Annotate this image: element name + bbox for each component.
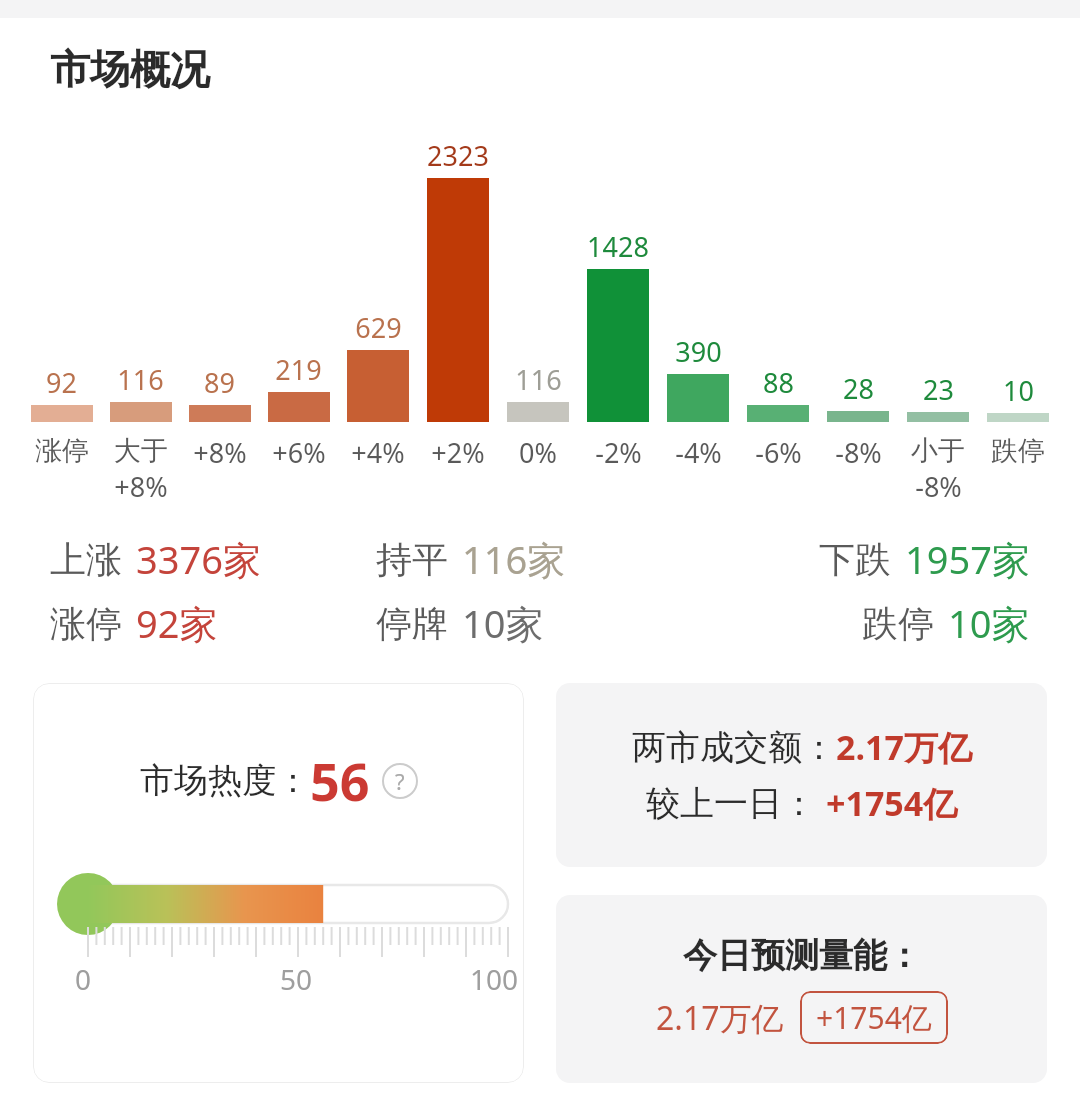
- staticText: 停牌: [376, 601, 448, 646]
- staticText: 116: [515, 361, 562, 398]
- staticText: 0%: [519, 434, 557, 471]
- button[interactable]: 下跌: [703, 533, 1030, 585]
- staticText: 1428: [587, 228, 649, 265]
- staticText: 涨停: [35, 434, 89, 468]
- staticText: +1754亿: [816, 997, 932, 1038]
- button[interactable]: 跌停: [703, 597, 1030, 649]
- staticText: 23: [923, 371, 954, 408]
- staticText: 持平: [376, 537, 448, 582]
- staticText: 92家: [136, 597, 218, 649]
- staticText: 大于: [114, 434, 168, 468]
- staticText: 56: [310, 745, 370, 816]
- staticText: -2%: [595, 434, 642, 471]
- staticText: -4%: [675, 434, 722, 471]
- staticText: 629: [355, 309, 402, 346]
- button[interactable]: 今日预测量能：: [556, 895, 1047, 1083]
- button[interactable]: 上涨: [50, 533, 376, 585]
- staticText: -6%: [755, 434, 802, 471]
- staticText: -8%: [835, 434, 882, 471]
- staticText: 10家: [948, 597, 1030, 649]
- staticText: 116: [117, 361, 164, 398]
- staticText: 市场概况: [50, 44, 210, 94]
- staticText: 较上一日：: [646, 782, 816, 825]
- staticText: +4%: [351, 434, 405, 471]
- button[interactable]: 停牌: [376, 597, 703, 649]
- staticText: 50: [222, 960, 370, 998]
- button[interactable]: 两市成交额：: [556, 683, 1047, 867]
- button[interactable]: 涨停: [50, 597, 376, 649]
- staticText: 3376家: [136, 533, 261, 585]
- staticText: 2323: [427, 137, 489, 174]
- staticText: 28: [843, 370, 874, 407]
- staticText: -8%: [915, 468, 962, 505]
- staticText: ?: [395, 766, 405, 796]
- staticText: 上涨: [50, 537, 122, 582]
- staticText: 2.17万亿: [656, 996, 784, 1040]
- staticText: +8%: [114, 468, 168, 505]
- staticText: 市场热度：: [140, 759, 310, 802]
- staticText: +2%: [431, 434, 485, 471]
- staticText: 10: [1003, 372, 1034, 409]
- staticText: 92: [46, 364, 77, 401]
- staticText: 89: [204, 364, 235, 401]
- staticText: 下跌: [819, 537, 891, 582]
- staticText: 今日预测量能：: [683, 934, 921, 977]
- staticText: 88: [763, 364, 794, 401]
- staticText: 跌停: [991, 434, 1045, 468]
- button[interactable]: 市场热度：: [33, 683, 524, 1083]
- staticText: 1957家: [905, 533, 1030, 585]
- staticText: 两市成交额：: [632, 726, 836, 769]
- staticText: +8%: [193, 434, 247, 471]
- staticText: 0: [75, 960, 222, 998]
- staticText: 2.17万亿: [836, 724, 972, 770]
- staticText: 219: [275, 351, 322, 388]
- staticText: +1754亿: [826, 780, 958, 826]
- staticText: 小于: [911, 434, 965, 468]
- staticText: 100: [370, 960, 518, 998]
- staticText: 116家: [462, 533, 566, 585]
- staticText: 跌停: [862, 601, 934, 646]
- button[interactable]: 帮助: [382, 763, 418, 799]
- staticText: 涨停: [50, 601, 122, 646]
- button[interactable]: 持平: [376, 533, 703, 585]
- staticText: 390: [675, 333, 722, 370]
- staticText: +6%: [272, 434, 326, 471]
- staticText: 10家: [462, 597, 544, 649]
